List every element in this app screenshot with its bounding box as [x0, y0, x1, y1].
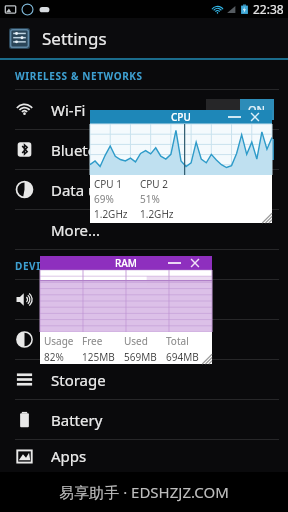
- staticText: Used: [124, 334, 148, 348]
- staticText: 82%: [44, 350, 64, 364]
- staticText: 1.2GHz: [94, 207, 128, 221]
- staticText: Total: [166, 334, 189, 348]
- staticText: CPU 2: [140, 177, 168, 191]
- staticText: Display: [51, 330, 103, 350]
- staticText: Settings: [42, 27, 107, 50]
- staticText: Wi-Fi: [51, 100, 86, 120]
- staticText: Bluetooth: [51, 140, 121, 160]
- staticText: Storage: [51, 370, 106, 390]
- staticText: ON: [248, 102, 266, 117]
- button[interactable]: Data usage: [0, 170, 288, 209]
- staticText: More...: [51, 220, 101, 240]
- button[interactable]: Bluetooth: [0, 130, 288, 169]
- button[interactable]: Battery: [0, 400, 288, 439]
- staticText: 69%: [94, 192, 114, 206]
- button[interactable]: Close CPU monitor: [248, 110, 266, 124]
- staticText: 51%: [140, 192, 160, 206]
- staticText: 1.2GHz: [140, 207, 174, 221]
- staticText: 125MB: [82, 350, 115, 364]
- button[interactable]: More...: [0, 210, 288, 249]
- staticText: Apps: [51, 446, 87, 466]
- staticText: 22:38: [253, 1, 284, 17]
- button[interactable]: ON: [206, 139, 274, 160]
- staticText: 694MB: [166, 350, 199, 364]
- button[interactable]: Minimize CPU monitor: [226, 110, 242, 124]
- staticText: DEVICE: [15, 259, 54, 273]
- staticText: Usage: [44, 334, 74, 348]
- button[interactable]: Storage: [0, 360, 288, 399]
- button[interactable]: Apps: [0, 440, 288, 472]
- staticText: CPU: [171, 110, 191, 124]
- staticText: RAM: [115, 256, 138, 270]
- staticText: 易享助手 · EDSHZJZ.COM: [59, 482, 229, 502]
- staticText: CPU 1: [94, 177, 122, 191]
- staticText: 569MB: [124, 350, 157, 364]
- button[interactable]: Minimize RAM monitor: [166, 256, 182, 270]
- staticText: Free: [82, 334, 103, 348]
- button[interactable]: ON: [206, 99, 274, 120]
- staticText: ON: [248, 142, 266, 157]
- button[interactable]: Close RAM monitor: [188, 256, 206, 270]
- button[interactable]: Wi-Fi: [0, 90, 288, 129]
- staticText: Sound: [51, 290, 97, 310]
- button[interactable]: Sound: [0, 280, 288, 319]
- button[interactable]: Display: [0, 320, 288, 359]
- staticText: Data usage: [51, 180, 131, 200]
- staticText: WIRELESS & NETWORKS: [15, 69, 143, 83]
- staticText: Battery: [51, 410, 103, 430]
